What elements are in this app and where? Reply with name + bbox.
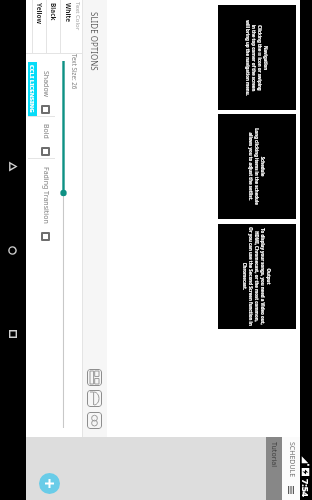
button[interactable]: Tutorial bbox=[266, 437, 282, 500]
button[interactable]: Recent apps bbox=[1, 322, 25, 346]
button[interactable]: Navigation Clicking the ☰ icon or swipin… bbox=[218, 5, 296, 110]
button[interactable]: Add item bbox=[39, 473, 60, 494]
staticText: Navigation Clicking the ☰ icon or swipin… bbox=[245, 20, 269, 96]
staticText: SCHEDULE bbox=[287, 442, 297, 478]
button[interactable]: Bold bbox=[33, 124, 59, 156]
button[interactable]: Text Color bbox=[61, 0, 82, 53]
staticText: Text Size: 26 bbox=[71, 54, 79, 90]
staticText: Text Color bbox=[74, 2, 82, 31]
button[interactable]: CCLI LICENSING bbox=[28, 62, 37, 116]
button[interactable]: Yellow bbox=[33, 0, 46, 53]
staticText: Yellow bbox=[35, 3, 44, 24]
button[interactable]: Black screen bbox=[87, 412, 102, 429]
staticText: 7:54 bbox=[300, 479, 312, 497]
staticText: Black bbox=[49, 3, 58, 21]
button[interactable]: Black bbox=[47, 0, 60, 53]
staticText: Output To display your songs, you need a… bbox=[242, 227, 272, 326]
button[interactable]: Shadow bbox=[33, 71, 59, 114]
button[interactable]: Back bbox=[1, 154, 25, 178]
button[interactable]: Fading Transition bbox=[33, 167, 59, 241]
button[interactable]: Open navigation menu bbox=[285, 484, 297, 496]
button[interactable]: Home bbox=[1, 238, 25, 262]
button[interactable]: Blank screen bbox=[87, 369, 102, 386]
button[interactable]: Schedule Long clicking items in the sche… bbox=[218, 114, 296, 219]
button[interactable]: Output To display your songs, you need a… bbox=[218, 224, 296, 329]
staticText: Tutorial bbox=[269, 442, 279, 468]
button[interactable]: Clear slide bbox=[87, 390, 102, 407]
staticText: White bbox=[64, 3, 73, 23]
staticText: CCLI LICENSING bbox=[28, 65, 36, 113]
staticText: Shadow bbox=[41, 71, 51, 97]
staticText: Bold bbox=[41, 124, 51, 139]
staticText: Schedule Long clicking items in the sche… bbox=[248, 128, 266, 205]
staticText: SLIDE OPTIONS bbox=[89, 12, 100, 71]
staticText: Fading Transition bbox=[41, 167, 51, 224]
